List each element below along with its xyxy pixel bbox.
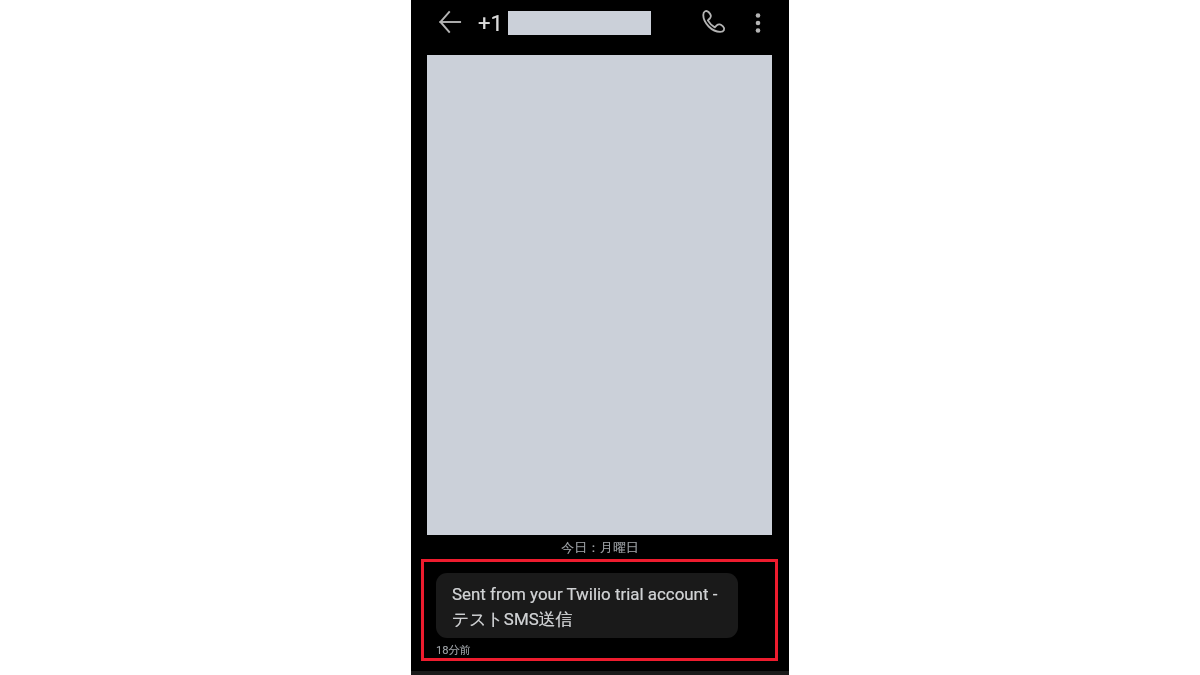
- staticText: 18分前: [436, 643, 471, 657]
- button[interactable]: More options: [741, 6, 774, 39]
- button[interactable]: Sent from your Twilio trial account - テス…: [436, 573, 738, 638]
- button[interactable]: Call: [696, 4, 730, 38]
- staticText: +1: [478, 11, 503, 37]
- staticText: 今日：月曜日: [411, 540, 789, 556]
- staticText: Sent from your Twilio trial account - テス…: [452, 584, 718, 630]
- button[interactable]: Back: [433, 5, 466, 38]
